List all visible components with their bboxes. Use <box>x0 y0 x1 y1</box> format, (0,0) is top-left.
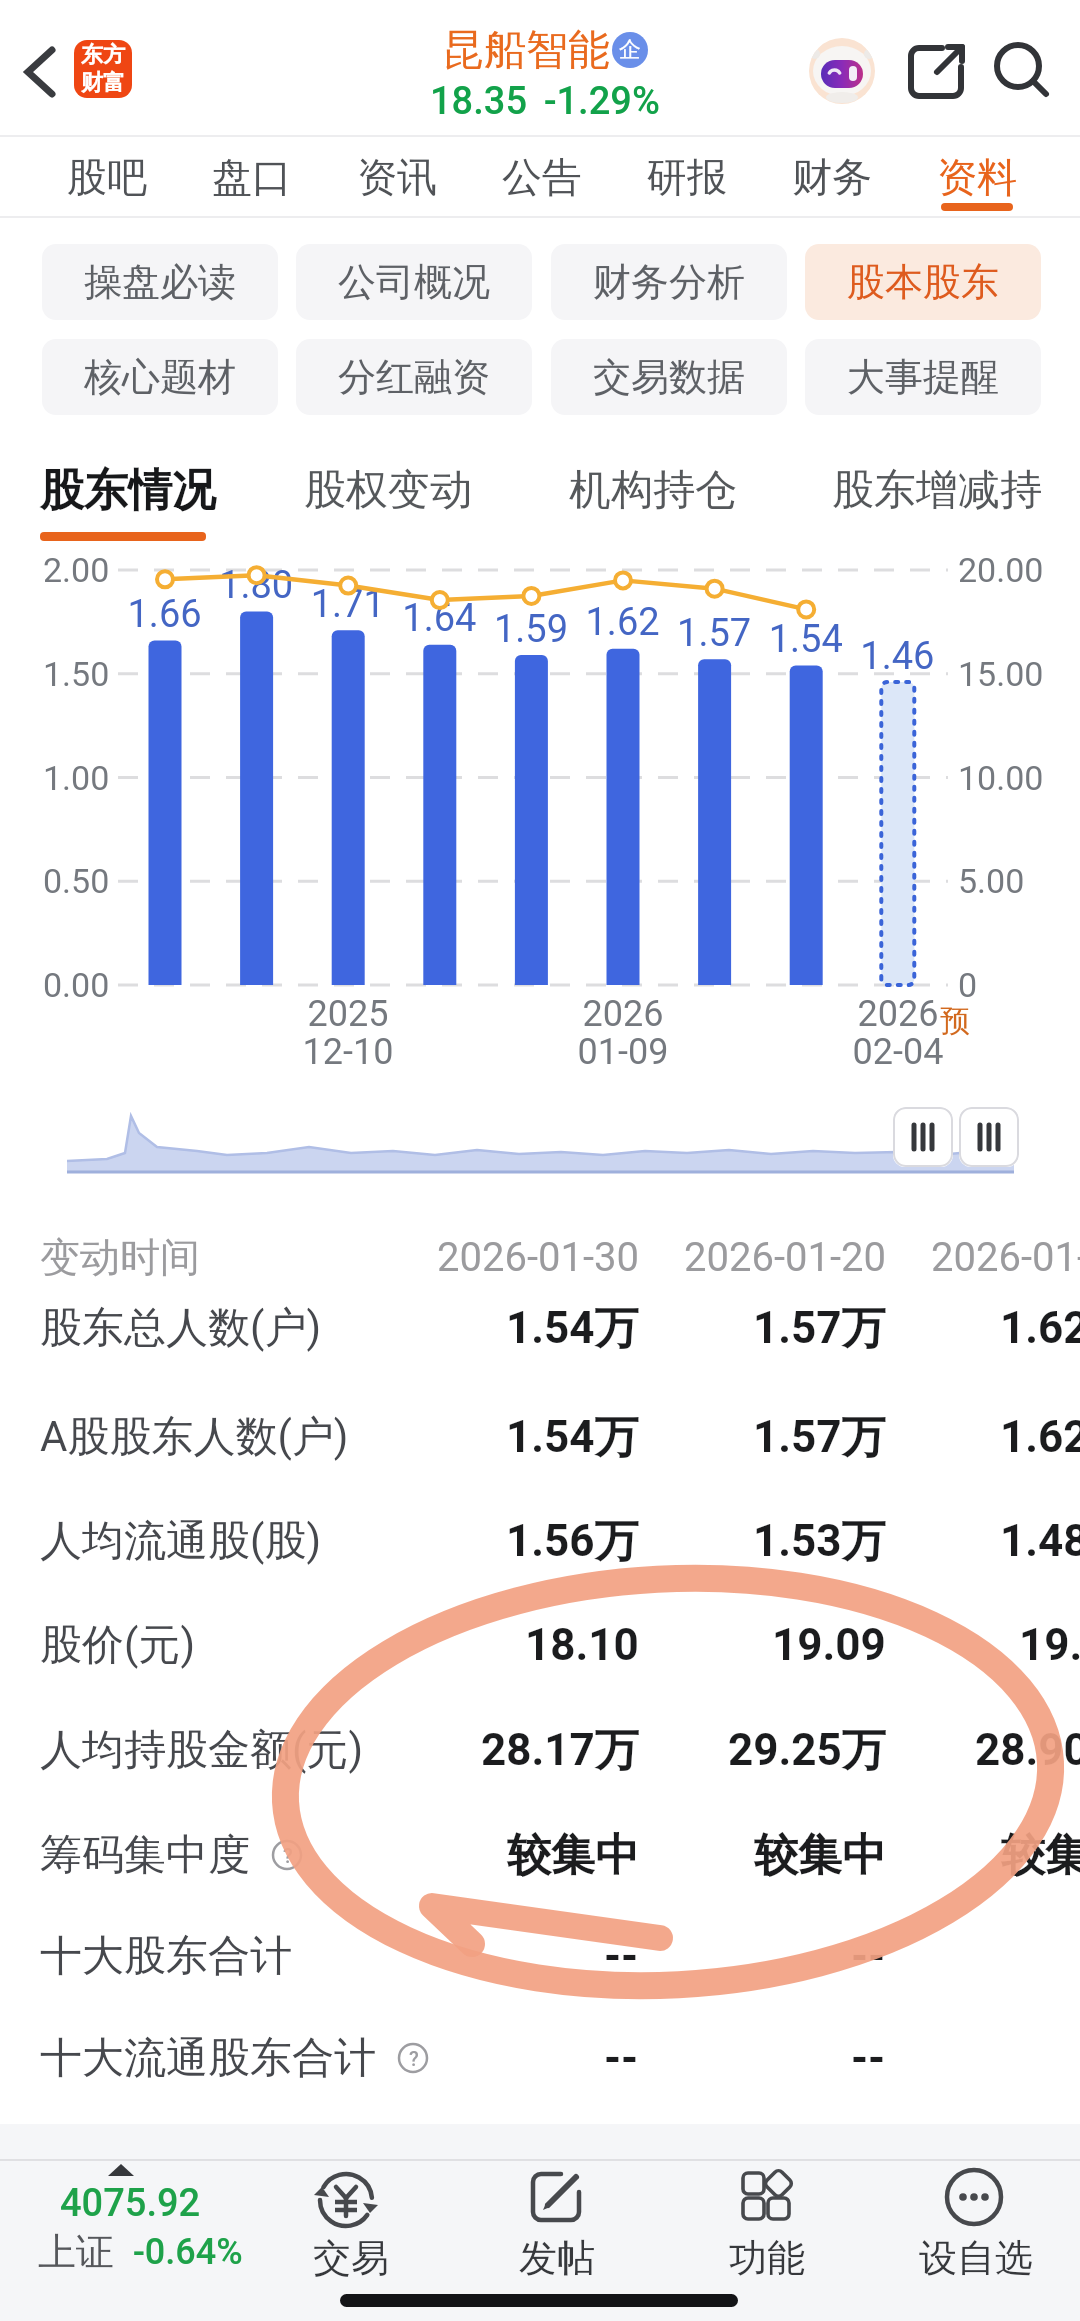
staticText: 4075.92 <box>60 2181 201 2226</box>
staticText: 资讯 <box>357 152 437 202</box>
button[interactable]: 功能 <box>701 2162 833 2290</box>
staticText: 十大股东合计 <box>40 1930 292 1983</box>
staticText: 1.48万 <box>1000 1514 1080 1569</box>
button[interactable]: 盘口 <box>192 140 312 214</box>
staticText: 财富 <box>81 69 125 97</box>
button[interactable]: 大事提醒 <box>805 339 1041 415</box>
button[interactable] <box>10 40 70 104</box>
staticText: 1.57万 <box>753 1410 886 1465</box>
staticText: 28.90万 <box>975 1723 1080 1778</box>
staticText: 公告 <box>502 152 582 202</box>
button[interactable]: 发帖 <box>491 2162 623 2290</box>
staticText: ? <box>283 1844 293 1867</box>
staticText: 28.17万 <box>481 1723 639 1778</box>
button[interactable]: 股东增减持 <box>822 455 1052 525</box>
button[interactable] <box>908 43 966 101</box>
staticText: 财务 <box>792 152 872 202</box>
button[interactable]: 机构持仓 <box>559 455 747 525</box>
staticText: 1.53万 <box>753 1514 886 1569</box>
staticText: 设自选 <box>919 2234 1033 2282</box>
staticText: 股本股东 <box>847 258 999 306</box>
staticText: 较集中 <box>507 1828 639 1883</box>
button[interactable]: 财务分析 <box>551 244 787 320</box>
button[interactable]: 股吧 <box>47 140 167 214</box>
staticText: 企 <box>619 36 641 64</box>
button[interactable]: 东方 <box>74 40 132 98</box>
button[interactable]: 核心题材 <box>42 339 278 415</box>
staticText: -1.29% <box>544 79 660 124</box>
staticText: 18.10 <box>525 1619 639 1671</box>
staticText: A股股东人数(户) <box>40 1411 349 1464</box>
staticText: 公司概况 <box>338 258 490 306</box>
staticText: -- <box>604 2032 639 2084</box>
staticText: 1.57万 <box>753 1301 886 1356</box>
staticText: 变动时间 <box>40 1232 200 1282</box>
staticText: 1.56万 <box>506 1514 639 1569</box>
staticText: -- <box>851 2032 886 2084</box>
staticText: 1.54万 <box>506 1301 639 1356</box>
button[interactable]: 资料 <box>917 140 1037 214</box>
staticText: 资料 <box>937 152 1017 202</box>
staticText: 昆船智能 <box>442 24 610 77</box>
button[interactable]: ? <box>272 1839 304 1871</box>
button[interactable]: 股权变动 <box>294 455 482 525</box>
staticText: 发帖 <box>519 2234 595 2282</box>
staticText: 29.25万 <box>728 1723 886 1778</box>
staticText: 股东总人数(户) <box>40 1302 321 1355</box>
staticText: 2026-01-20 <box>684 1234 886 1281</box>
staticText: 操盘必读 <box>84 258 236 306</box>
staticText: 较集中 <box>754 1828 886 1883</box>
staticText: 2026-01-30 <box>437 1234 639 1281</box>
button[interactable]: 研报 <box>627 140 747 214</box>
button[interactable] <box>959 1107 1019 1167</box>
button[interactable]: 交易数据 <box>551 339 787 415</box>
button[interactable]: 股本股东 <box>805 244 1041 320</box>
staticText: 上证 <box>38 2228 114 2276</box>
staticText: 19.09 <box>1019 1619 1080 1671</box>
staticText: 盘口 <box>212 152 292 202</box>
button[interactable] <box>809 38 875 104</box>
staticText: 19.09 <box>772 1619 886 1671</box>
button[interactable]: 交易 <box>285 2162 417 2290</box>
staticText: 18.35 <box>430 79 528 124</box>
button[interactable]: 操盘必读 <box>42 244 278 320</box>
staticText: -- <box>851 1930 886 1982</box>
button[interactable] <box>992 40 1052 100</box>
button[interactable]: 财务 <box>772 140 892 214</box>
staticText: 股价(元) <box>40 1619 195 1672</box>
staticText: 股权变动 <box>304 464 472 517</box>
staticText: 人均持股金额(元) <box>40 1724 363 1777</box>
staticText: 人均流通股(股) <box>40 1515 321 1568</box>
staticText: 十大流通股东合计 <box>40 2032 376 2085</box>
button[interactable]: 公告 <box>482 140 602 214</box>
staticText: 2026-01-09 <box>931 1234 1080 1281</box>
button[interactable]: 公司概况 <box>296 244 532 320</box>
button[interactable]: 股东情况 <box>40 455 280 525</box>
staticText: 机构持仓 <box>569 464 737 517</box>
button[interactable] <box>30 2166 260 2296</box>
staticText: 研报 <box>647 152 727 202</box>
staticText: 大事提醒 <box>847 353 999 401</box>
staticText: ? <box>409 2047 419 2070</box>
button[interactable]: 资讯 <box>337 140 457 214</box>
staticText: -0.64% <box>133 2231 243 2273</box>
staticText: 股东增减持 <box>832 464 1042 517</box>
staticText: 1.62万 <box>1000 1410 1080 1465</box>
button[interactable] <box>893 1107 953 1167</box>
staticText: 1.62万 <box>1000 1301 1080 1356</box>
staticText: 东方 <box>81 41 125 69</box>
staticText: 较集中 <box>1001 1828 1080 1883</box>
staticText: 分红融资 <box>338 353 490 401</box>
staticText: 筹码集中度 <box>40 1829 250 1882</box>
staticText: 核心题材 <box>84 353 236 401</box>
staticText: 交易数据 <box>593 353 745 401</box>
button[interactable]: ? <box>398 2042 430 2074</box>
staticText: 交易 <box>313 2234 389 2282</box>
button[interactable]: 设自选 <box>900 2162 1052 2290</box>
staticText: 功能 <box>729 2234 805 2282</box>
staticText: 1.54万 <box>506 1410 639 1465</box>
button[interactable]: 分红融资 <box>296 339 532 415</box>
staticText: -- <box>604 1930 639 1982</box>
staticText: 股东情况 <box>40 463 216 518</box>
staticText: 财务分析 <box>593 258 745 306</box>
